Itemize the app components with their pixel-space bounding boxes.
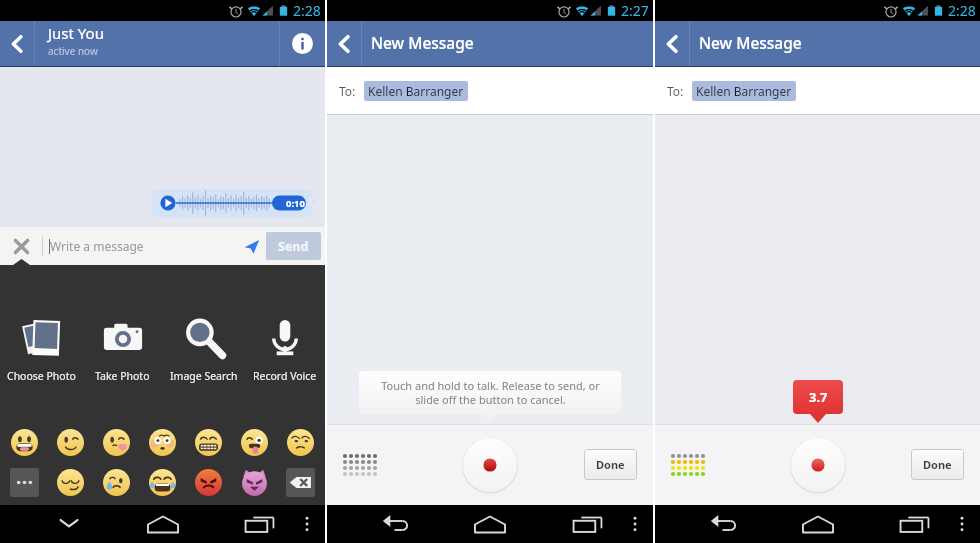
- button[interactable]: Recent apps: [238, 505, 280, 543]
- staticText: New Message: [371, 32, 474, 53]
- button[interactable]: TEETH: [194, 428, 223, 457]
- button[interactable]: Details: [280, 21, 325, 66]
- button[interactable]: More options: [295, 505, 319, 543]
- staticText: active now: [48, 44, 98, 58]
- staticText: Image Search: [170, 369, 238, 383]
- staticText: Record Voice: [253, 369, 317, 383]
- staticText: Send: [278, 238, 309, 255]
- button[interactable]: Back: [375, 505, 417, 543]
- button[interactable]: Back: [0, 21, 34, 66]
- button[interactable]: DEVIL: [240, 468, 269, 497]
- button[interactable]: Send: [266, 232, 321, 260]
- button[interactable]: Home: [141, 505, 185, 543]
- staticText: To:: [339, 83, 356, 99]
- button[interactable]: Choose Photo: [1, 314, 82, 383]
- button[interactable]: Record Voice: [244, 314, 325, 383]
- button[interactable]: Send location: [236, 227, 266, 265]
- button[interactable]: BACK: [286, 468, 315, 497]
- staticText: Choose Photo: [7, 369, 76, 383]
- button[interactable]: FLUSH: [148, 428, 177, 457]
- button[interactable]: Done: [911, 449, 964, 480]
- button[interactable]: Close: [0, 227, 42, 265]
- staticText: 2:28: [293, 1, 321, 20]
- button[interactable]: More options: [950, 505, 974, 543]
- button[interactable]: SMIRK2: [286, 428, 315, 457]
- button[interactable]: Back: [48, 505, 90, 543]
- button[interactable]: JOY: [148, 468, 177, 497]
- button[interactable]: Write a message: [49, 227, 236, 265]
- button[interactable]: WINK: [56, 428, 85, 457]
- button[interactable]: SMIRK: [56, 468, 85, 497]
- button[interactable]: Kellen Barranger: [368, 83, 464, 99]
- staticText: 2:28: [948, 1, 976, 20]
- staticText: Done: [923, 457, 952, 472]
- button[interactable]: GRIN: [10, 428, 39, 457]
- staticText: Just You: [48, 23, 104, 43]
- button[interactable]: Recent apps: [893, 505, 935, 543]
- button[interactable]: CRY: [102, 468, 131, 497]
- staticText: To:: [667, 83, 684, 99]
- button[interactable]: Home: [468, 505, 512, 543]
- button[interactable]: Image Search: [163, 314, 244, 383]
- button[interactable]: Home: [796, 505, 840, 543]
- button[interactable]: DOTS: [10, 468, 39, 497]
- staticText: Write a message: [50, 238, 144, 254]
- staticText: Touch and hold to talk. Release to send,…: [381, 378, 600, 407]
- button[interactable]: Back: [655, 21, 689, 66]
- staticText: 0:10: [286, 197, 305, 210]
- staticText: New Message: [699, 32, 802, 53]
- button[interactable]: Done: [584, 449, 637, 480]
- staticText: Done: [596, 457, 625, 472]
- button[interactable]: ANGRY: [194, 468, 223, 497]
- button[interactable]: Back: [327, 21, 361, 66]
- button[interactable]: More options: [623, 505, 647, 543]
- button[interactable]: Take Photo: [82, 314, 163, 383]
- button[interactable]: TONGUE: [240, 428, 269, 457]
- button[interactable]: Back: [703, 505, 745, 543]
- staticText: Kellen Barranger: [368, 83, 464, 99]
- staticText: Kellen Barranger: [696, 83, 792, 99]
- button[interactable]: Kellen Barranger: [696, 83, 792, 99]
- button[interactable]: KISS: [102, 428, 131, 457]
- staticText: Take Photo: [95, 369, 150, 383]
- button[interactable]: Recent apps: [566, 505, 608, 543]
- staticText: 2:27: [621, 1, 649, 20]
- staticText: 3.7: [809, 388, 828, 406]
